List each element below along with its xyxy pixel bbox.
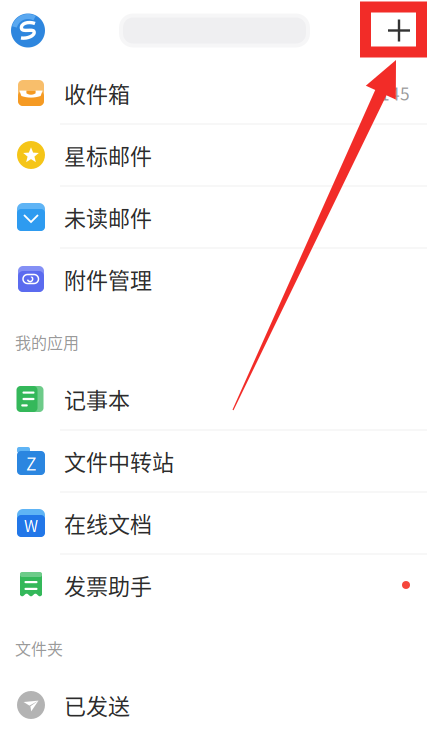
staticText: 记事本 (64, 383, 130, 415)
button[interactable]: 星标邮件 (0, 124, 427, 186)
staticText: 发票助手 (64, 569, 152, 601)
button[interactable]: W (0, 492, 427, 554)
button[interactable]: Compose (386, 17, 412, 43)
button[interactable]: 收件箱 (0, 62, 427, 124)
button[interactable]: 附件管理 (0, 248, 427, 310)
staticText: 附件管理 (64, 263, 152, 295)
staticText: Z (26, 450, 36, 476)
staticText: 文件夹 (15, 636, 63, 659)
button[interactable]: 发票助手 (0, 554, 427, 616)
staticText: 收件箱 (64, 77, 130, 109)
button[interactable]: 未读邮件 (0, 186, 427, 248)
staticText: 文件中转站 (64, 445, 174, 477)
button[interactable]: 已发送 (0, 674, 427, 736)
button[interactable]: 记事本 (0, 368, 427, 430)
button[interactable]: Z (0, 430, 427, 492)
staticText: W (24, 513, 38, 537)
staticText: 星标邮件 (64, 139, 152, 171)
staticText: 在线文档 (64, 507, 152, 539)
staticText: 未读邮件 (64, 201, 152, 233)
staticText: 我的应用 (15, 330, 79, 353)
button[interactable]: Account (11, 13, 45, 47)
staticText: 145 (380, 80, 410, 106)
staticText: 已发送 (64, 689, 130, 721)
